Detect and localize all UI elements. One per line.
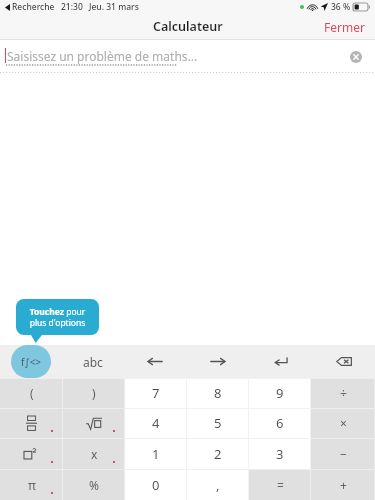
button[interactable]: %: [63, 469, 125, 500]
button[interactable]: ,: [187, 469, 249, 500]
button[interactable]: [0, 408, 63, 438]
staticText: Calculateur: [153, 18, 223, 35]
staticText: x: [91, 446, 98, 462]
button[interactable]: ×: [311, 408, 375, 438]
button[interactable]: [0, 438, 63, 469]
staticText: 5: [214, 414, 222, 432]
button[interactable]: 2: [187, 438, 249, 469]
staticText: abc: [83, 354, 103, 370]
button[interactable]: [63, 408, 125, 438]
button[interactable]: 1: [125, 438, 187, 469]
button[interactable]: f∫<>: [0, 345, 62, 378]
staticText: Touchez pour plus d'options: [23, 306, 92, 328]
staticText: ÷: [340, 385, 347, 401]
button[interactable]: Flèche droite: [186, 345, 249, 378]
button[interactable]: ÷: [311, 378, 375, 408]
button[interactable]: Effacer: [345, 46, 367, 68]
button[interactable]: Supprimer: [312, 345, 375, 378]
staticText: f∫<>: [21, 355, 42, 369]
button[interactable]: 8: [187, 378, 249, 408]
button[interactable]: 7: [125, 378, 187, 408]
button[interactable]: Entrée: [249, 345, 312, 378]
staticText: %: [89, 477, 99, 493]
staticText: 6: [276, 414, 284, 432]
staticText: Fermer: [324, 19, 365, 35]
staticText: Recherche: [12, 1, 55, 13]
button[interactable]: 6: [249, 408, 311, 438]
staticText: 21:30: [61, 1, 83, 13]
staticText: 3: [276, 445, 284, 463]
staticText: ): [92, 385, 96, 401]
staticText: 36 %: [331, 1, 351, 13]
button[interactable]: 5: [187, 408, 249, 438]
button[interactable]: 4: [125, 408, 187, 438]
staticText: 0: [152, 476, 160, 494]
button[interactable]: Flèche gauche: [124, 345, 186, 378]
staticText: π: [28, 477, 36, 493]
staticText: ,: [216, 476, 220, 494]
button[interactable]: π: [0, 469, 63, 500]
button[interactable]: abc: [62, 345, 124, 378]
button[interactable]: Touchez pour plus d'options: [16, 299, 99, 335]
button[interactable]: ): [63, 378, 125, 408]
button[interactable]: Fermer: [314, 15, 375, 39]
staticText: Jeu. 31 mars: [89, 1, 139, 13]
staticText: (: [30, 385, 34, 401]
staticText: −: [340, 446, 347, 462]
staticText: 4: [152, 414, 160, 432]
staticText: 8: [214, 384, 222, 402]
button[interactable]: +: [311, 469, 375, 500]
button[interactable]: 0: [125, 469, 187, 500]
staticText: 2: [214, 445, 222, 463]
staticText: Saisissez un problème de maths...: [7, 48, 198, 64]
button[interactable]: (: [0, 378, 63, 408]
staticText: 9: [276, 384, 284, 402]
staticText: 7: [152, 384, 160, 402]
button[interactable]: 9: [249, 378, 311, 408]
button[interactable]: =: [249, 469, 311, 500]
staticText: 1: [152, 445, 160, 463]
button[interactable]: x: [63, 438, 125, 469]
staticText: +: [340, 477, 347, 493]
button[interactable]: 3: [249, 438, 311, 469]
button[interactable]: −: [311, 438, 375, 469]
staticText: =: [277, 477, 284, 493]
staticText: ×: [340, 415, 347, 431]
